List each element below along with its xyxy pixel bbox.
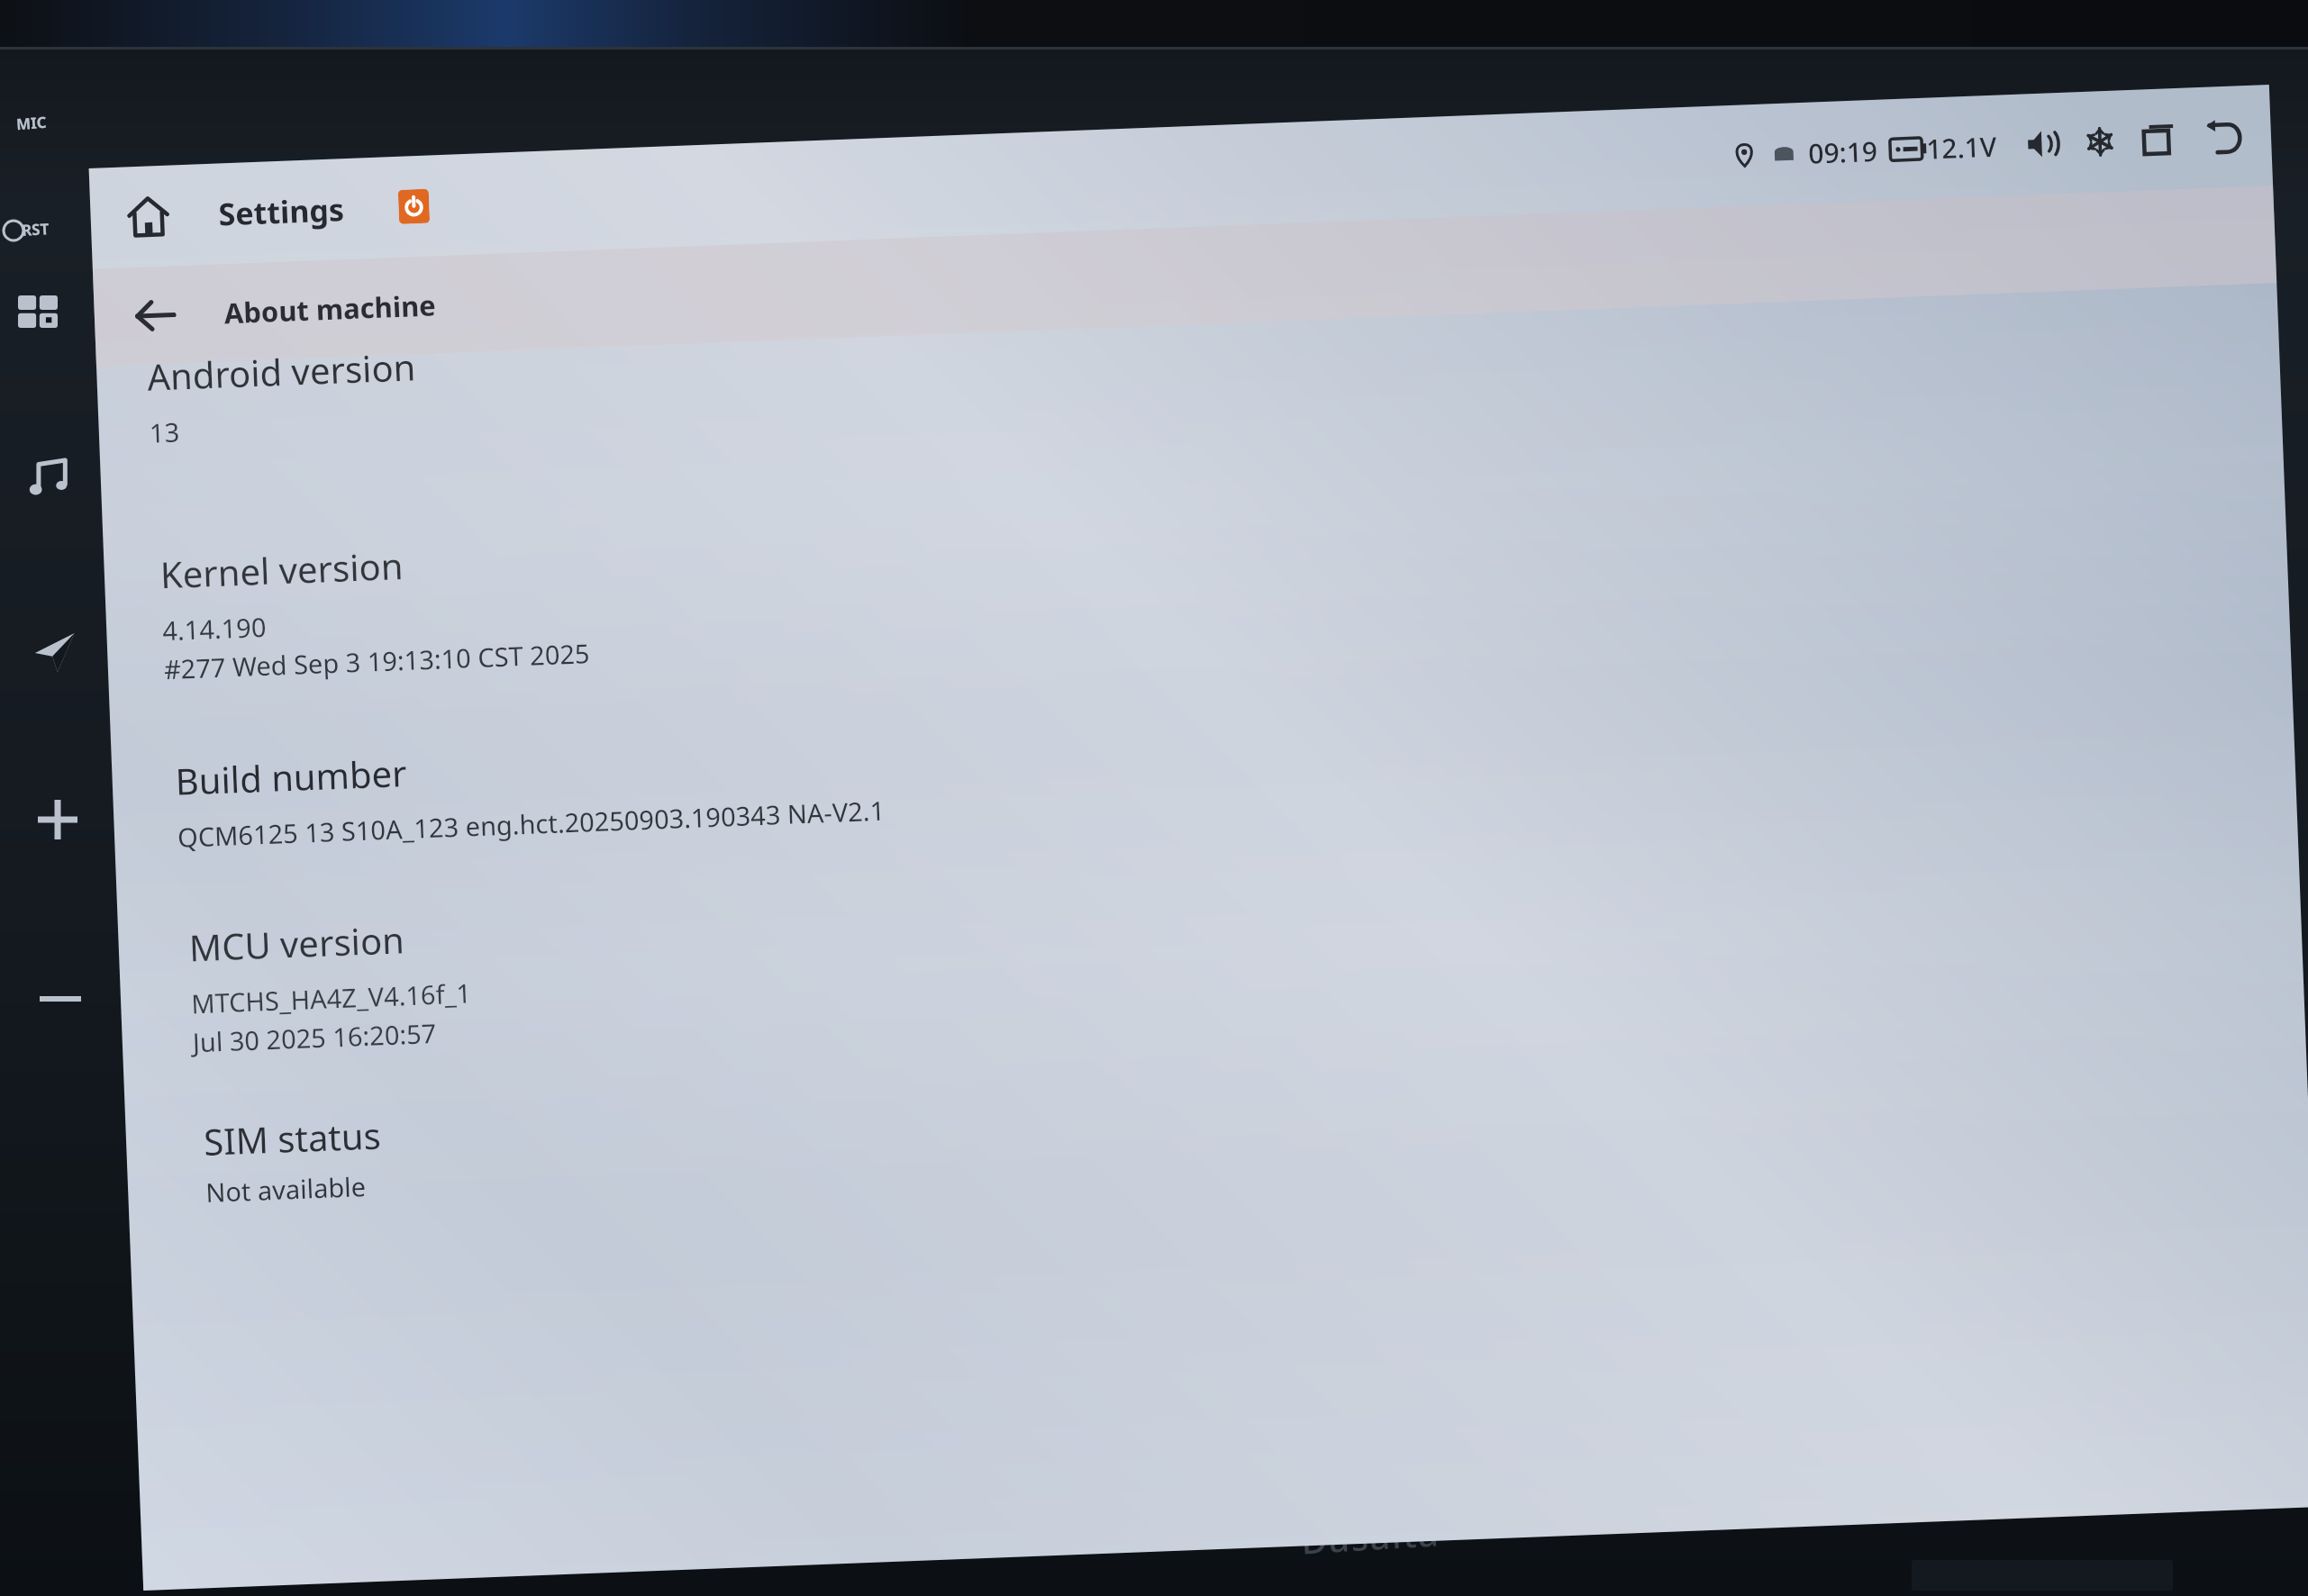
staticText: About machine	[223, 286, 436, 332]
staticText: SIM status	[203, 1110, 382, 1165]
button[interactable]: Settings	[218, 188, 345, 235]
staticText: Kernel version	[159, 540, 404, 598]
button[interactable]: Air conditioning	[2078, 119, 2122, 164]
staticText: QCM6125 13 S10A_123 eng.hct.20250903.190…	[177, 792, 886, 855]
staticText: Android version	[146, 342, 416, 401]
staticText: Build number	[174, 748, 408, 805]
button[interactable]: Back	[2200, 113, 2249, 161]
staticText: MCU version	[188, 914, 405, 971]
button[interactable]: Home	[115, 183, 182, 250]
button[interactable]: Android version	[96, 283, 2282, 500]
staticText: Dasaita	[1299, 1507, 1441, 1564]
button[interactable]: Navigate up	[126, 286, 186, 345]
staticText: MIC	[15, 112, 47, 134]
staticText: #277 Wed Sep 3 19:13:10 CST 2025	[163, 635, 590, 686]
button[interactable]: Notification	[398, 189, 430, 224]
button[interactable]: Build number	[110, 625, 2296, 877]
staticText: MTCHS_HA4Z_V4.16f_1	[191, 975, 472, 1021]
staticText: Not available	[205, 1168, 367, 1210]
button[interactable]: SIM status	[124, 998, 2308, 1208]
staticText: 4.14.190	[162, 609, 268, 648]
button[interactable]: MCU version	[116, 793, 2304, 1082]
staticText: 12.1V	[1925, 128, 1998, 167]
staticText: 13	[149, 414, 181, 450]
staticText: 09:19	[1808, 132, 1878, 172]
button[interactable]: Navigate up	[93, 186, 2277, 366]
button[interactable]: Volume	[2020, 122, 2065, 166]
staticText: RST	[21, 218, 50, 240]
staticText: Jul 30 2025 16:20:57	[192, 1015, 437, 1060]
button[interactable]: Kernel version	[102, 416, 2290, 708]
button[interactable]: Recent apps	[2137, 117, 2182, 162]
